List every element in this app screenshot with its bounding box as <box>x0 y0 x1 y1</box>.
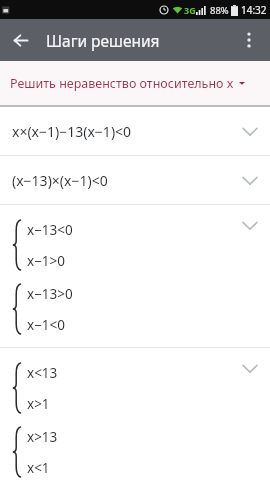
button[interactable]: x<13 <box>0 348 270 480</box>
staticText: Решить неравенство относительно x <box>10 75 234 92</box>
staticText: x<1 <box>27 459 50 477</box>
staticText: 14:32 <box>241 3 267 17</box>
staticText: 3G <box>184 4 196 16</box>
staticText: x<13 <box>27 364 58 382</box>
staticText: (x−13)×(x−1)<0 <box>12 171 108 190</box>
staticText: x−1<0 <box>27 316 66 334</box>
staticText: x−13>0 <box>27 285 73 303</box>
button[interactable]: (x−13)×(x−1)<0 <box>0 156 270 204</box>
button[interactable]: x×(x−1)−13(x−1)<0 <box>0 107 270 155</box>
staticText: 88% <box>210 4 229 17</box>
button[interactable]: Решить неравенство относительно x <box>0 61 270 105</box>
staticText: x>13 <box>27 428 58 446</box>
button[interactable]: Back <box>0 19 42 61</box>
staticText: x−13<0 <box>27 221 73 239</box>
staticText: x−1>0 <box>27 252 66 270</box>
staticText: x×(x−1)−13(x−1)<0 <box>12 122 132 141</box>
button[interactable]: x−13<0 <box>0 205 270 347</box>
staticText: Шаги решения <box>46 30 160 51</box>
staticText: x>1 <box>27 395 50 413</box>
button[interactable]: More options <box>228 19 270 61</box>
